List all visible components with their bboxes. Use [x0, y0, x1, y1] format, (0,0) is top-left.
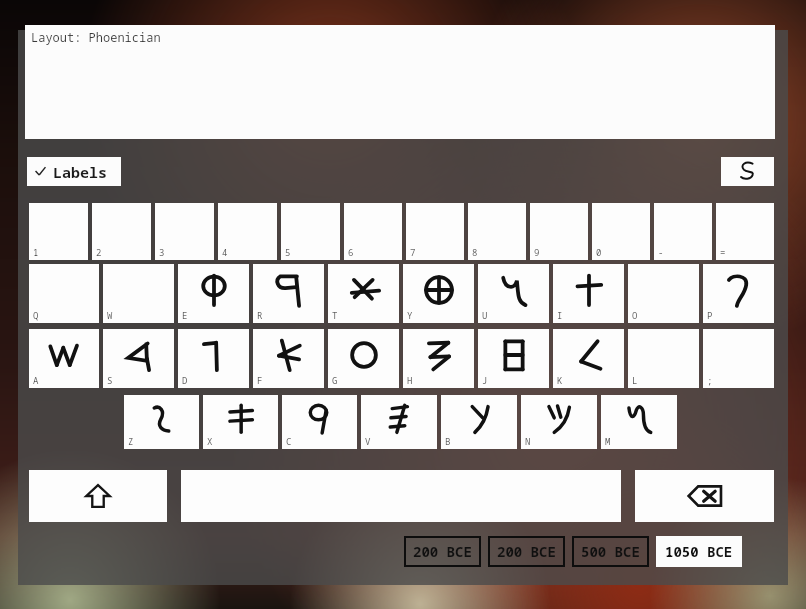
staticText: 500 BCE	[581, 542, 640, 561]
button[interactable]: 2	[92, 203, 151, 260]
staticText: N	[525, 435, 531, 447]
button[interactable]: 0	[592, 203, 650, 260]
button[interactable]: D	[178, 329, 249, 388]
button[interactable]: U	[478, 264, 549, 323]
staticText: 200 BCE	[497, 542, 556, 561]
button[interactable]: 9	[530, 203, 588, 260]
button[interactable]: F	[253, 329, 324, 388]
staticText: M	[605, 435, 611, 447]
staticText: 1050 BCE	[665, 542, 733, 561]
staticText: R	[257, 309, 263, 321]
button[interactable]: O	[628, 264, 699, 323]
button[interactable]: 200 BCE	[488, 536, 565, 567]
button[interactable]: ;	[703, 329, 774, 388]
button[interactable]: X	[203, 395, 278, 449]
staticText: Labels	[53, 162, 108, 182]
staticText: I	[557, 309, 563, 321]
staticText: E	[182, 309, 188, 321]
button[interactable]: T	[328, 264, 399, 323]
button[interactable]: K	[553, 329, 624, 388]
button[interactable]: M	[601, 395, 677, 449]
staticText: F	[257, 374, 263, 386]
staticText: G	[332, 374, 338, 386]
staticText: 1	[33, 246, 39, 258]
button[interactable]: V	[361, 395, 437, 449]
staticText: Y	[407, 309, 413, 321]
button[interactable]: 6	[344, 203, 402, 260]
button[interactable]: R	[253, 264, 324, 323]
staticText: Q	[33, 309, 39, 321]
staticText: 9	[534, 246, 540, 258]
button[interactable]: P	[703, 264, 774, 323]
staticText: X	[207, 435, 213, 447]
staticText: 8	[472, 246, 478, 258]
button[interactable]: B	[441, 395, 517, 449]
button[interactable]: S	[103, 329, 174, 388]
staticText: Layout: Phoenician	[31, 29, 161, 45]
staticText: 7	[410, 246, 416, 258]
button[interactable]: I	[553, 264, 624, 323]
button[interactable]: G	[328, 329, 399, 388]
staticText: J	[482, 374, 488, 386]
button[interactable]: Switch script	[721, 157, 774, 186]
staticText: 2	[96, 246, 102, 258]
button[interactable]: =	[716, 203, 774, 260]
staticText: D	[182, 374, 188, 386]
staticText: ;	[707, 374, 713, 386]
button[interactable]: 3	[155, 203, 214, 260]
button[interactable]: 7	[406, 203, 464, 260]
button[interactable]: 1050 BCE	[656, 536, 742, 567]
staticText: 5	[285, 246, 291, 258]
staticText: 3	[159, 246, 165, 258]
button[interactable]: E	[178, 264, 249, 323]
button[interactable]: W	[103, 264, 174, 323]
staticText: V	[365, 435, 371, 447]
button[interactable]: 8	[468, 203, 526, 260]
button[interactable]: 1	[29, 203, 88, 260]
button[interactable]: 200 BCE	[404, 536, 481, 567]
button[interactable]: Layout: Phoenician	[25, 25, 775, 139]
button[interactable]: Backspace	[635, 470, 774, 522]
button[interactable]: J	[478, 329, 549, 388]
staticText: =	[720, 246, 726, 258]
staticText: O	[632, 309, 638, 321]
staticText: W	[107, 309, 113, 321]
button[interactable]: Labels	[27, 157, 121, 186]
staticText: A	[33, 374, 39, 386]
button[interactable]: A	[29, 329, 99, 388]
button[interactable]: -	[654, 203, 712, 260]
button[interactable]: C	[282, 395, 357, 449]
staticText: 6	[348, 246, 354, 258]
staticText: P	[707, 309, 713, 321]
button[interactable]: 500 BCE	[572, 536, 649, 567]
staticText: H	[407, 374, 413, 386]
button[interactable]: Y	[403, 264, 474, 323]
button[interactable]: Q	[29, 264, 99, 323]
button[interactable]: L	[628, 329, 699, 388]
staticText: S	[107, 374, 113, 386]
staticText: B	[445, 435, 451, 447]
staticText: T	[332, 309, 338, 321]
staticText: 4	[222, 246, 228, 258]
staticText: -	[658, 246, 664, 258]
button[interactable]: 5	[281, 203, 340, 260]
staticText: 0	[596, 246, 602, 258]
button[interactable]: H	[403, 329, 474, 388]
button[interactable]: N	[521, 395, 597, 449]
staticText: U	[482, 309, 488, 321]
button[interactable]: Z	[124, 395, 199, 449]
staticText: L	[632, 374, 638, 386]
button[interactable]: Shift	[29, 470, 167, 522]
staticText: C	[286, 435, 292, 447]
button[interactable]: 4	[218, 203, 277, 260]
staticText: K	[557, 374, 563, 386]
staticText: Z	[128, 435, 134, 447]
staticText: 200 BCE	[413, 542, 472, 561]
